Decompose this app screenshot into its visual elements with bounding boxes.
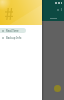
button[interactable]: Backup Info <box>0 35 26 40</box>
button[interactable]: Real-Time Msgs <box>0 28 26 33</box>
staticText: Backup Info <box>6 36 22 40</box>
button[interactable] <box>22 15 43 21</box>
button[interactable]: New chat <box>54 85 61 92</box>
button[interactable] <box>43 15 64 21</box>
button[interactable] <box>0 15 22 21</box>
staticText: Real-Time Msgs <box>6 29 26 33</box>
